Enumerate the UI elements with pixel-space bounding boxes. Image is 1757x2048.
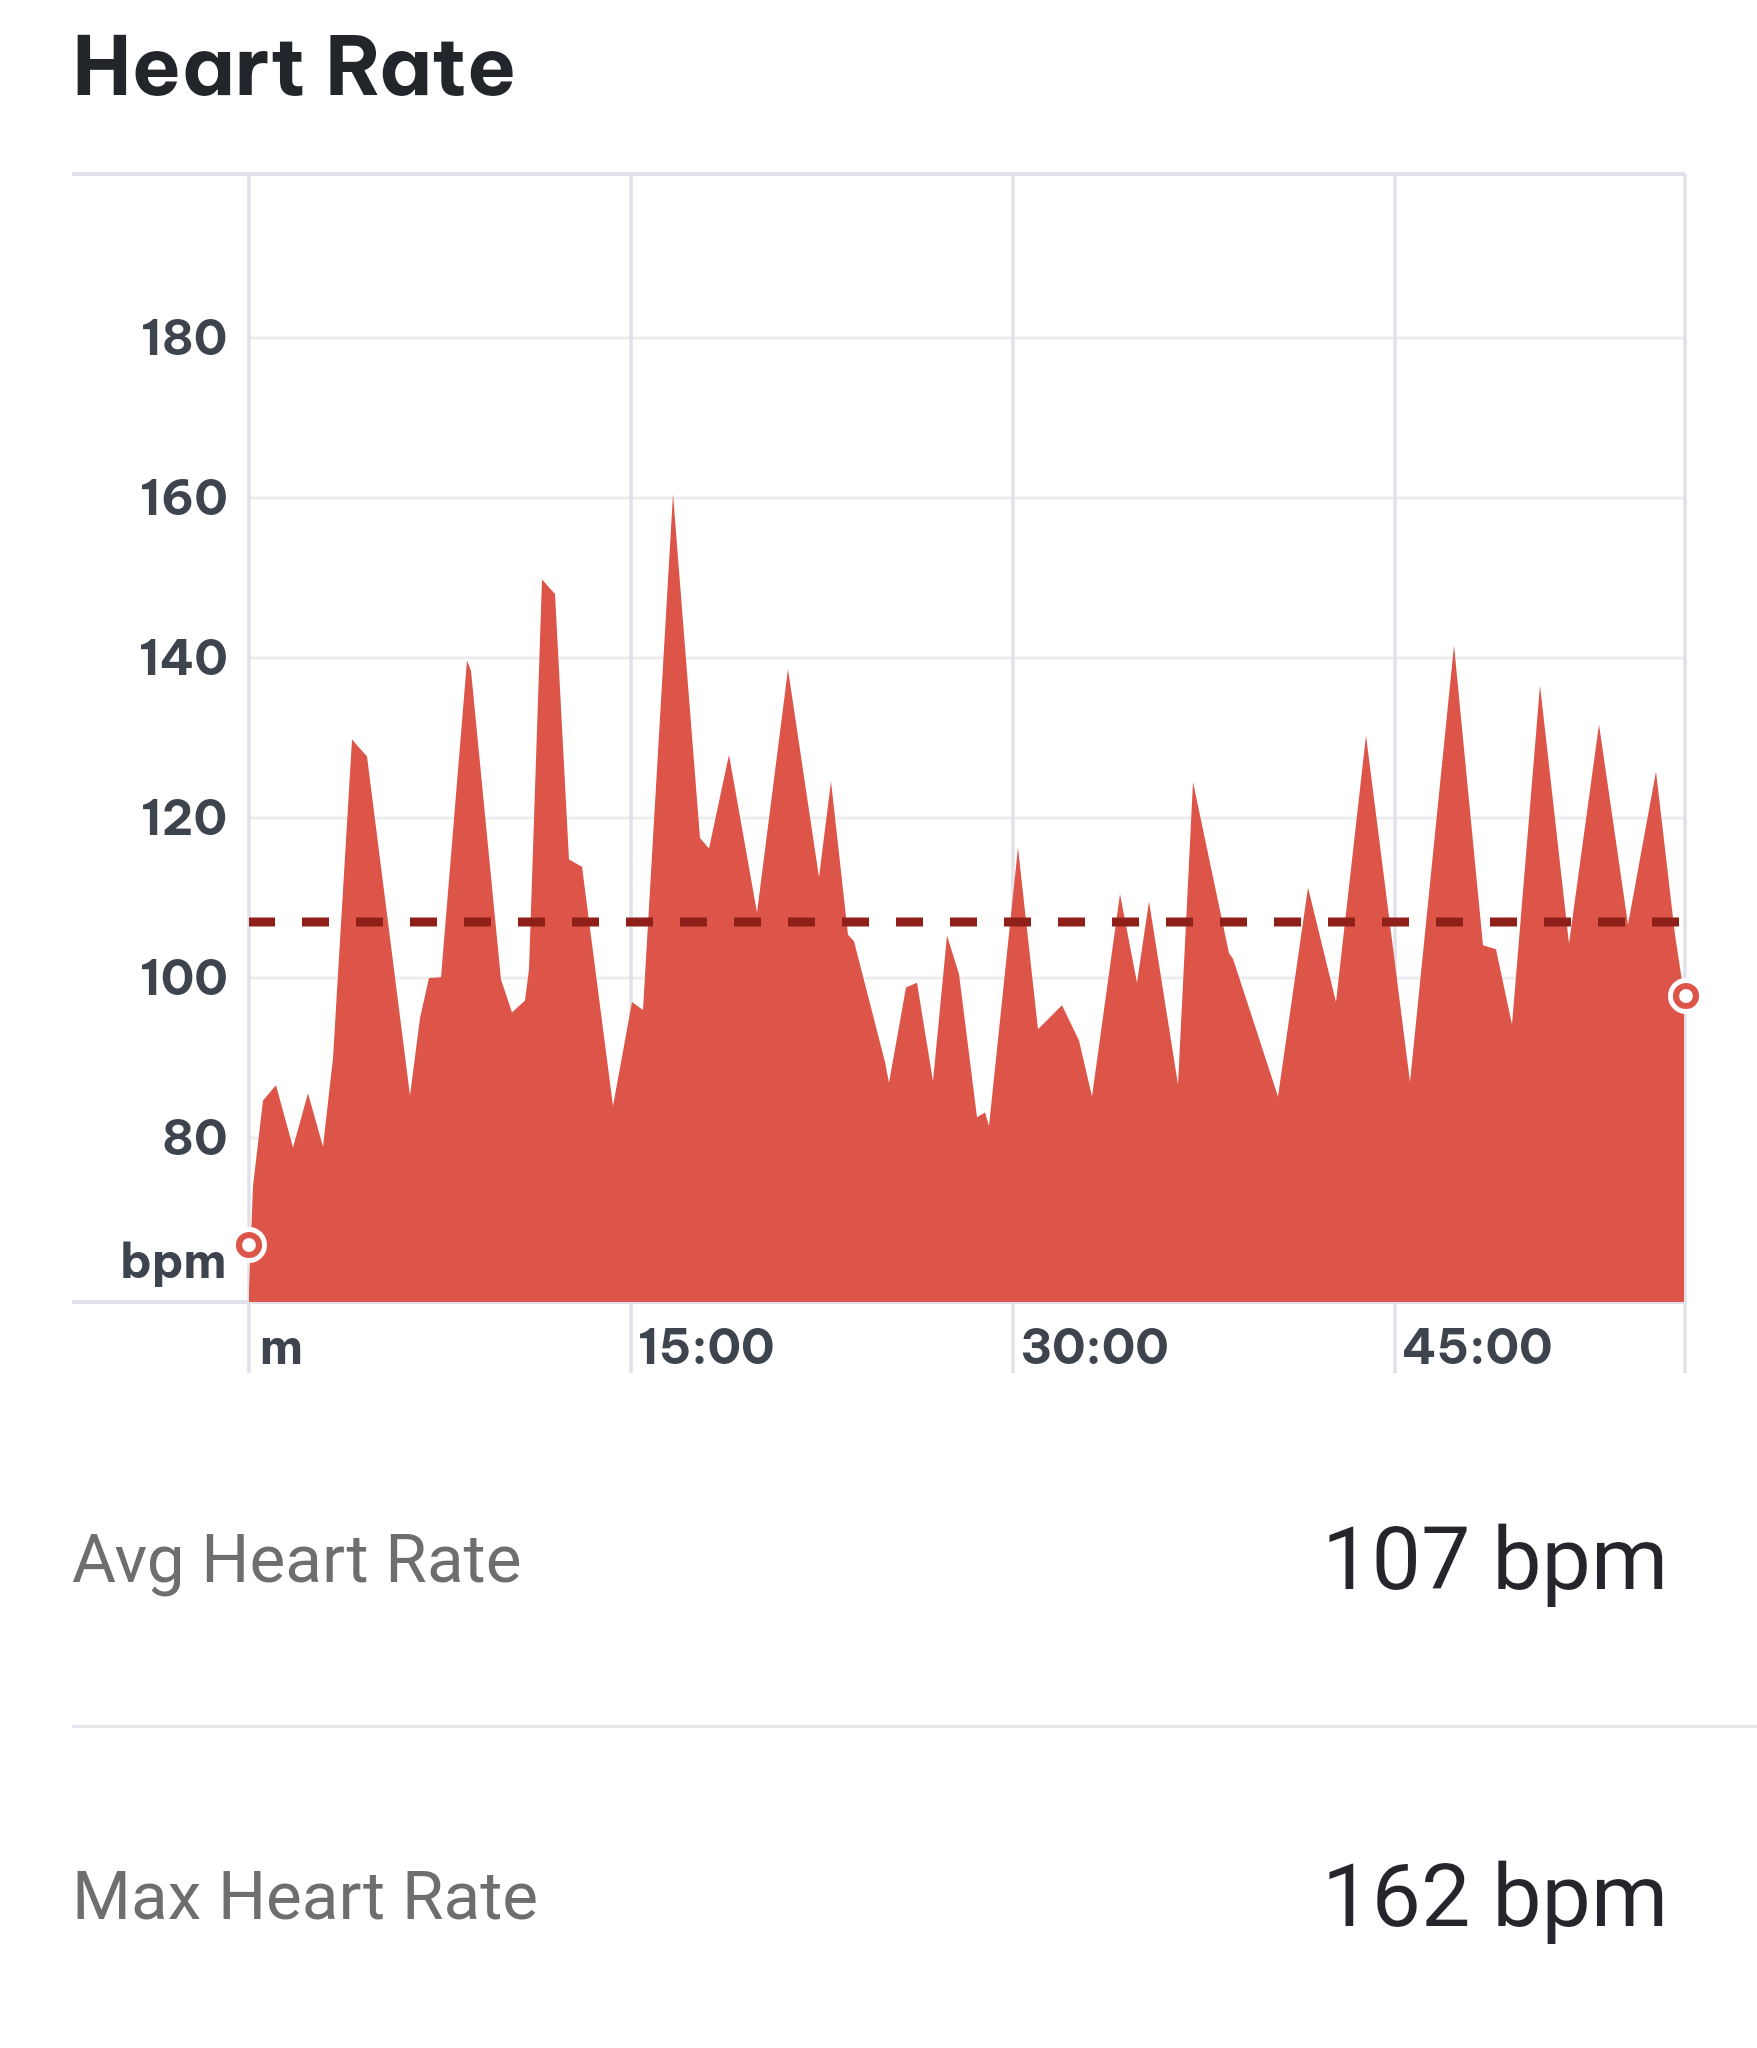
staticText: 80 — [162, 1107, 228, 1168]
staticText: 140 — [139, 627, 228, 688]
staticText: 180 — [141, 307, 228, 368]
other: Heart rate chart — [0, 0, 1757, 2048]
staticText: Max Heart Rate — [72, 1856, 539, 1935]
staticText: Heart Rate — [72, 13, 517, 116]
button[interactable]: Max Heart Rate — [0, 1728, 1757, 2048]
staticText: 160 — [140, 467, 228, 528]
staticText: Avg Heart Rate — [72, 1519, 522, 1598]
staticText: 162 bpm — [1322, 1844, 1669, 1947]
staticText: 45:00 — [1402, 1316, 1553, 1377]
staticText: 15:00 — [638, 1316, 775, 1377]
staticText: 120 — [141, 787, 228, 848]
staticText: 107 bpm — [1322, 1507, 1669, 1610]
staticText: bpm — [120, 1230, 227, 1291]
button[interactable]: Avg Heart Rate — [0, 1391, 1757, 1725]
staticText: 30:00 — [1020, 1316, 1169, 1377]
staticText: m — [260, 1316, 304, 1377]
staticText: 100 — [140, 947, 228, 1008]
